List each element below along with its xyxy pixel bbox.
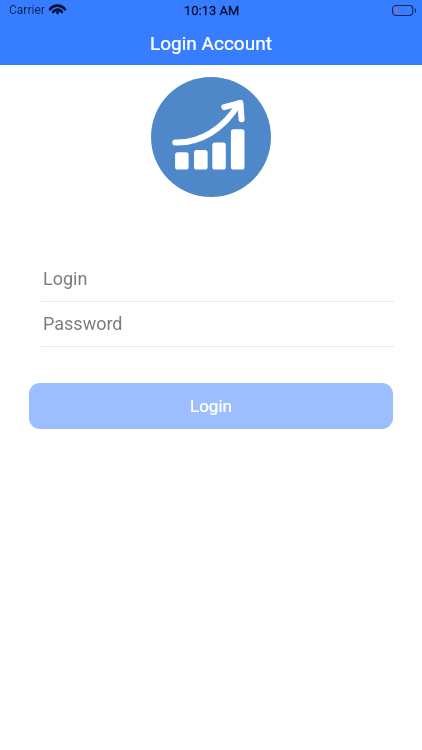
button[interactable]: Password (41, 317, 394, 347)
staticText: 10:13 AM (184, 3, 240, 18)
staticText: Login (43, 268, 88, 289)
other: Battery (392, 5, 417, 16)
button[interactable]: Login (41, 272, 394, 302)
staticText: Login Account (150, 32, 272, 54)
staticText: Carrier (9, 3, 45, 17)
other: Wi-Fi signal (50, 4, 65, 16)
staticText: Password (43, 313, 123, 334)
button[interactable]: Login (29, 383, 393, 429)
staticText: Login (190, 396, 232, 416)
